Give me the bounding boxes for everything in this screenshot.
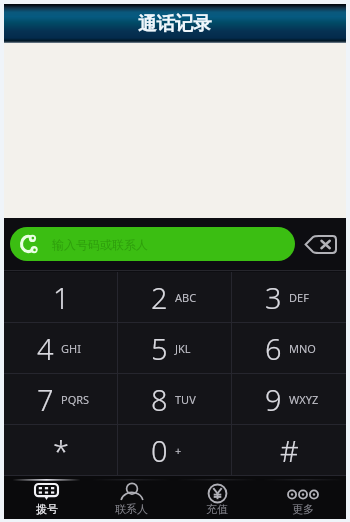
staticText: + bbox=[175, 443, 182, 458]
staticText: 2 bbox=[151, 278, 168, 317]
button[interactable]: 拨号 bbox=[4, 476, 89, 519]
staticText: JKL bbox=[175, 341, 191, 356]
button[interactable]: 7 bbox=[4, 374, 118, 424]
staticText: WXYZ bbox=[289, 392, 319, 407]
staticText: 拨号 bbox=[36, 502, 58, 516]
staticText: 7 bbox=[37, 380, 54, 419]
staticText: 5 bbox=[151, 329, 168, 368]
staticText: 9 bbox=[265, 380, 282, 419]
button[interactable]: 5 bbox=[118, 323, 232, 373]
staticText: # bbox=[280, 431, 299, 470]
button[interactable]: 输入号码或联系人 bbox=[10, 227, 295, 261]
staticText: * bbox=[53, 431, 69, 470]
staticText: 0 bbox=[151, 431, 168, 470]
staticText: 4 bbox=[37, 329, 54, 368]
button[interactable]: 联系人 bbox=[89, 476, 174, 519]
button[interactable]: 更多 bbox=[260, 476, 346, 519]
button[interactable]: 充值 bbox=[174, 476, 260, 519]
staticText: MNO bbox=[289, 341, 316, 356]
staticText: 更多 bbox=[292, 502, 314, 516]
button[interactable]: * bbox=[4, 425, 118, 475]
button[interactable]: 6 bbox=[232, 323, 346, 373]
staticText: DEF bbox=[289, 290, 309, 305]
button[interactable]: # bbox=[232, 425, 346, 475]
button[interactable]: 3 bbox=[232, 272, 346, 322]
staticText: 6 bbox=[265, 329, 282, 368]
button[interactable]: 0 bbox=[118, 425, 232, 475]
staticText: 8 bbox=[151, 380, 168, 419]
button[interactable]: 4 bbox=[4, 323, 118, 373]
button[interactable]: 2 bbox=[118, 272, 232, 322]
staticText: 联系人 bbox=[115, 502, 148, 516]
button[interactable]: Backspace bbox=[300, 227, 340, 261]
staticText: PQRS bbox=[61, 392, 90, 407]
staticText: 充值 bbox=[206, 502, 228, 516]
button[interactable]: 9 bbox=[232, 374, 346, 424]
staticText: 输入号码或联系人 bbox=[52, 237, 148, 252]
staticText: GHI bbox=[61, 341, 81, 356]
staticText: ABC bbox=[175, 290, 197, 305]
staticText: 3 bbox=[265, 278, 282, 317]
button[interactable]: 8 bbox=[118, 374, 232, 424]
button[interactable]: 1 bbox=[4, 272, 118, 322]
staticText: TUV bbox=[175, 392, 196, 407]
staticText: 1 bbox=[53, 278, 70, 317]
staticText: 通话记录 bbox=[138, 12, 212, 35]
